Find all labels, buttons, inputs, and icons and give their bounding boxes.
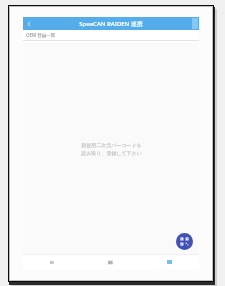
button[interactable]: グリッド [81,255,140,269]
staticText: 新規用二次元バーコードを [81,142,142,148]
button[interactable]: 戻る [23,17,35,30]
staticText: SpeeCAN RAIDEN 連携 [79,20,143,28]
button[interactable]: 二次元バーコードを読み取る [176,233,193,250]
staticText: 読み取り、登録して下さい [81,150,142,156]
staticText: OEM 登録一覧 [26,32,56,38]
button[interactable]: OEM 登録一覧 [23,30,199,40]
button[interactable]: 設定 [140,255,199,269]
button[interactable]: リスト [23,255,81,269]
